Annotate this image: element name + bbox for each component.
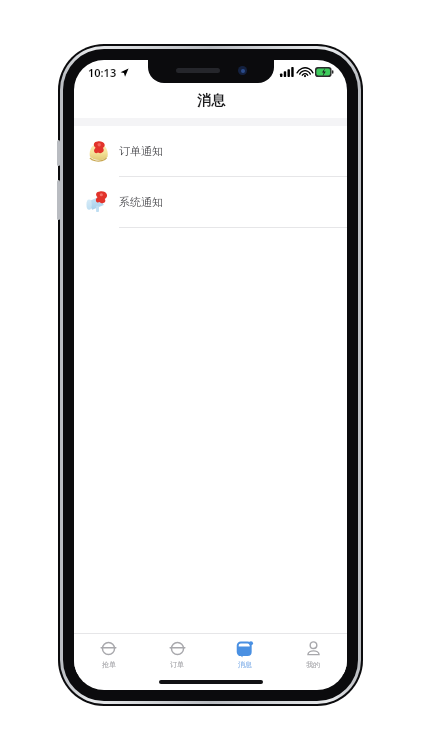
staticText: 订单	[170, 660, 184, 669]
button[interactable]: 订单通知	[74, 126, 347, 176]
button[interactable]: 消息	[211, 634, 279, 674]
staticText: 10:13	[88, 65, 117, 80]
button[interactable]: 抢单	[74, 634, 143, 674]
button[interactable]: 订单	[143, 634, 211, 674]
staticText: 抢单	[102, 660, 116, 669]
button[interactable]: 我的	[279, 634, 347, 674]
staticText: 系统通知	[119, 195, 163, 209]
staticText: 我的	[306, 660, 320, 669]
staticText: 订单通知	[119, 144, 163, 158]
staticText: 消息	[197, 92, 225, 110]
staticText: 消息	[238, 660, 252, 669]
button[interactable]: 系统通知	[74, 177, 347, 227]
